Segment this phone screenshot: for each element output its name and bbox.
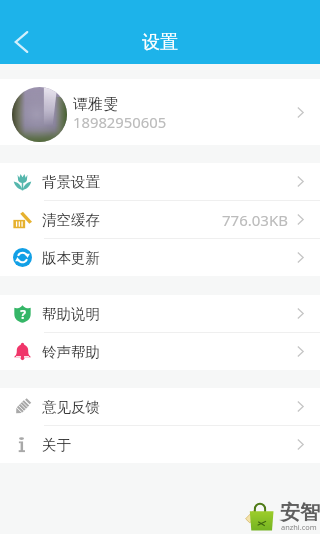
staticText: 18982950605 — [73, 112, 167, 132]
button[interactable]: 意见反馈 — [0, 388, 320, 425]
button[interactable]: 关于 — [0, 426, 320, 463]
staticText: 帮助说明 — [42, 305, 100, 323]
button[interactable]: 谭雅雯 — [0, 79, 320, 145]
button[interactable]: ? — [0, 295, 320, 332]
staticText: 关于 — [42, 436, 71, 454]
staticText: 安智 — [280, 500, 320, 525]
button[interactable]: 铃声帮助 — [0, 333, 320, 370]
button[interactable]: 版本更新 — [0, 239, 320, 276]
button[interactable]: 背景设置 — [0, 163, 320, 200]
staticText: 设置 — [142, 31, 178, 54]
button[interactable]: Back — [0, 20, 44, 64]
staticText: 谭雅雯 — [73, 95, 118, 114]
staticText: anzhi.com — [281, 522, 317, 532]
staticText: 背景设置 — [42, 173, 100, 191]
staticText: 776.03KB — [222, 210, 288, 230]
staticText: 意见反馈 — [42, 398, 100, 416]
staticText: 版本更新 — [42, 249, 100, 267]
staticText: 清空缓存 — [42, 211, 100, 229]
button[interactable]: 清空缓存 — [0, 201, 320, 238]
staticText: 铃声帮助 — [42, 343, 100, 361]
staticText: ? — [20, 306, 26, 322]
